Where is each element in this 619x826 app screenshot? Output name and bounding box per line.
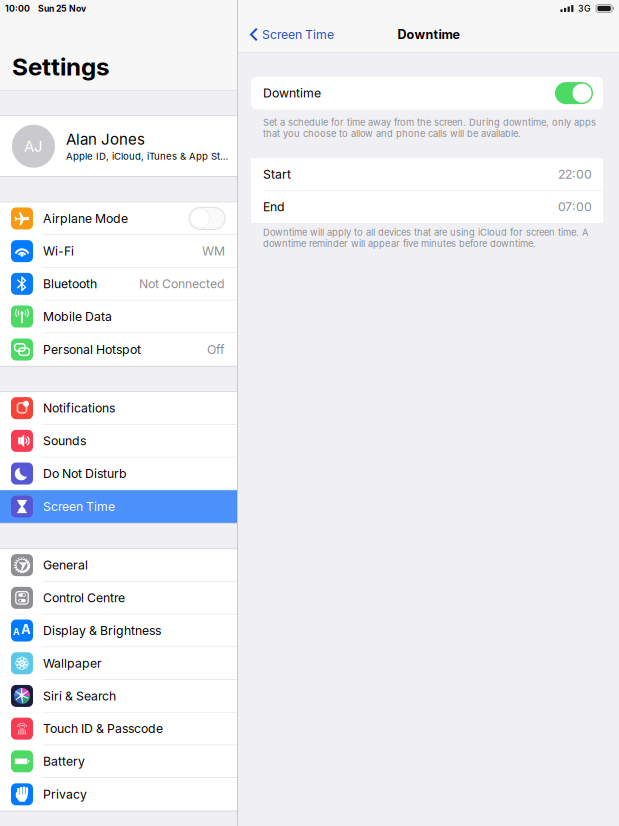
- staticText: 07:00: [558, 199, 592, 214]
- staticText: Personal Hotspot: [43, 342, 141, 357]
- staticText: Battery: [43, 754, 85, 769]
- staticText: Downtime: [263, 86, 321, 100]
- staticText: Siri & Search: [43, 688, 116, 703]
- staticText: Downtime will apply to all devices that …: [263, 227, 588, 249]
- button[interactable]: Personal Hotspot: [0, 333, 237, 366]
- staticText: Touch ID & Passcode: [43, 721, 163, 736]
- button[interactable]: Siri & Search: [0, 680, 237, 713]
- button[interactable]: Start: [251, 158, 603, 190]
- staticText: Do Not Disturb: [43, 466, 127, 481]
- button[interactable]: Touch ID & Passcode: [0, 713, 237, 745]
- button[interactable]: General: [0, 549, 237, 582]
- button[interactable]: Screen Time: [0, 490, 237, 523]
- staticText: WM: [202, 244, 225, 258]
- staticText: AJ: [24, 137, 43, 155]
- staticText: Not Connected: [139, 276, 225, 291]
- staticText: Sun 25 Nov: [38, 3, 86, 14]
- staticText: Airplane Mode: [43, 211, 128, 226]
- staticText: 3G: [578, 3, 591, 14]
- staticText: Bluetooth: [43, 276, 97, 291]
- staticText: General: [43, 558, 88, 572]
- staticText: Settings: [12, 52, 109, 81]
- button[interactable]: Sounds: [0, 425, 237, 457]
- staticText: Off: [207, 342, 225, 357]
- staticText: A: [13, 626, 20, 637]
- button[interactable]: AJ: [0, 116, 237, 176]
- staticText: A: [21, 622, 31, 637]
- staticText: 22:00: [558, 167, 592, 182]
- staticText: Control Centre: [43, 590, 125, 605]
- button[interactable]: Wi-Fi: [0, 235, 237, 268]
- button[interactable]: Wallpaper: [0, 647, 237, 680]
- button[interactable]: Battery: [0, 745, 237, 778]
- button[interactable]: Control Centre: [0, 582, 237, 614]
- button[interactable]: Bluetooth: [0, 268, 237, 300]
- staticText: 10:00: [5, 3, 30, 14]
- button[interactable]: Privacy: [0, 778, 237, 811]
- staticText: Screen Time: [262, 27, 334, 42]
- staticText: Notifications: [43, 401, 115, 415]
- button[interactable]: Airplane Mode: [0, 202, 237, 235]
- staticText: Mobile Data: [43, 309, 112, 324]
- button[interactable]: Screen Time: [238, 17, 334, 52]
- button[interactable]: End: [251, 191, 603, 223]
- staticText: End: [263, 199, 285, 214]
- staticText: Wallpaper: [43, 656, 102, 671]
- staticText: Sounds: [43, 433, 86, 448]
- button[interactable]: Mobile Data: [0, 300, 237, 333]
- staticText: Wi-Fi: [43, 244, 74, 258]
- staticText: Privacy: [43, 787, 87, 802]
- staticText: Alan Jones: [66, 130, 145, 148]
- staticText: Screen Time: [43, 499, 115, 514]
- button[interactable]: Do Not Disturb: [0, 457, 237, 490]
- staticText: Apple ID, iCloud, iTunes & App St…: [66, 150, 228, 162]
- staticText: Start: [263, 167, 291, 182]
- button[interactable]: Notifications: [0, 392, 237, 425]
- staticText: Set a schedule for time away from the sc…: [263, 117, 596, 139]
- button[interactable]: A: [0, 614, 237, 647]
- staticText: Downtime: [397, 27, 459, 42]
- staticText: Display & Brightness: [43, 623, 161, 638]
